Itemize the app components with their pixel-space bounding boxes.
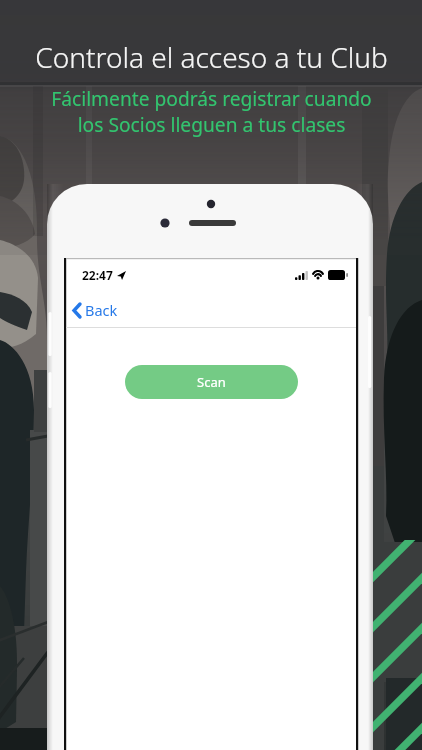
staticText: Scan: [197, 373, 226, 391]
staticText: Controla el acceso a tu Club: [35, 38, 388, 76]
staticText: Back: [85, 300, 118, 320]
staticText: Fácilmente podrás registrar cuando los S…: [51, 85, 372, 138]
button[interactable]: Back: [66, 295, 128, 325]
button[interactable]: Scan: [125, 365, 298, 399]
staticText: 22:47: [82, 267, 113, 283]
